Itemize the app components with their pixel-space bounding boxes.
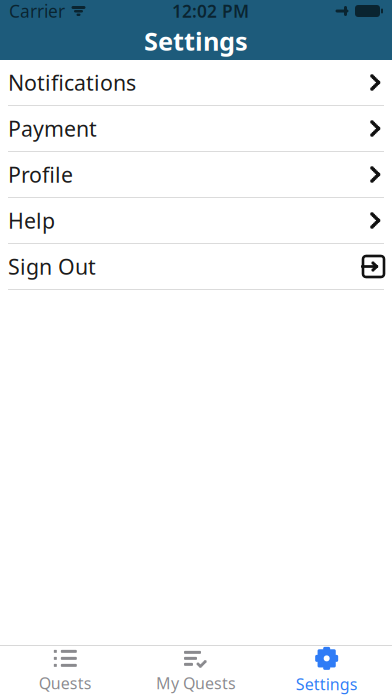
button[interactable]: My Quests [131, 646, 261, 696]
staticText: Carrier [9, 0, 65, 22]
button[interactable]: Sign Out [0, 244, 392, 289]
staticText: Settings [144, 24, 248, 58]
button[interactable]: Quests [0, 646, 131, 696]
staticText: Notifications [8, 68, 136, 97]
staticText: Help [8, 206, 55, 235]
button[interactable]: Help [0, 198, 392, 243]
staticText: Quests [39, 672, 92, 694]
staticText: Profile [8, 160, 73, 189]
button[interactable]: Profile [0, 152, 392, 197]
staticText: Settings [296, 673, 358, 695]
button[interactable]: Notifications [0, 60, 392, 105]
staticText: Payment [8, 114, 97, 143]
button[interactable]: Payment [0, 106, 392, 151]
staticText: Sign Out [8, 252, 96, 281]
staticText: 12:02 PM [172, 0, 249, 22]
button[interactable]: Settings [261, 646, 392, 696]
staticText: My Quests [156, 672, 236, 694]
